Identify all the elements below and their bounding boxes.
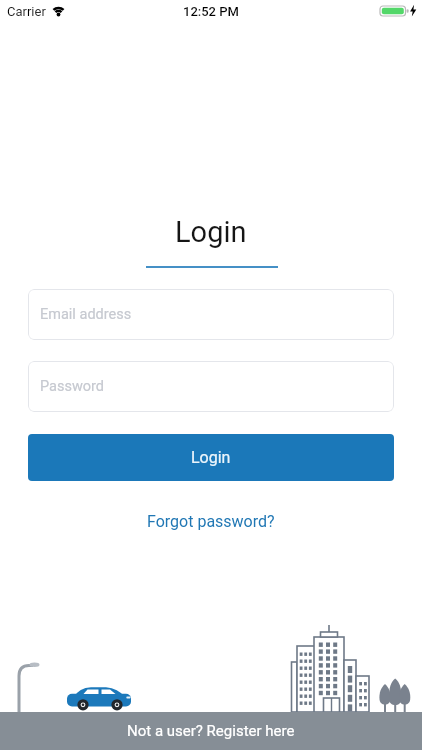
button[interactable]: Login xyxy=(28,434,394,481)
button[interactable]: Not a user? Register here xyxy=(0,712,422,750)
button[interactable]: Password xyxy=(28,361,394,412)
staticText: Login xyxy=(175,215,247,249)
button[interactable]: Email address xyxy=(28,289,394,340)
button[interactable]: Forgot password? xyxy=(147,512,275,531)
staticText: 12:52 PM xyxy=(183,4,239,19)
staticText: Login xyxy=(191,448,231,467)
staticText: Not a user? Register here xyxy=(127,722,295,740)
staticText: Email address xyxy=(40,306,132,323)
staticText: Carrier xyxy=(7,4,46,19)
staticText: Password xyxy=(40,378,105,395)
